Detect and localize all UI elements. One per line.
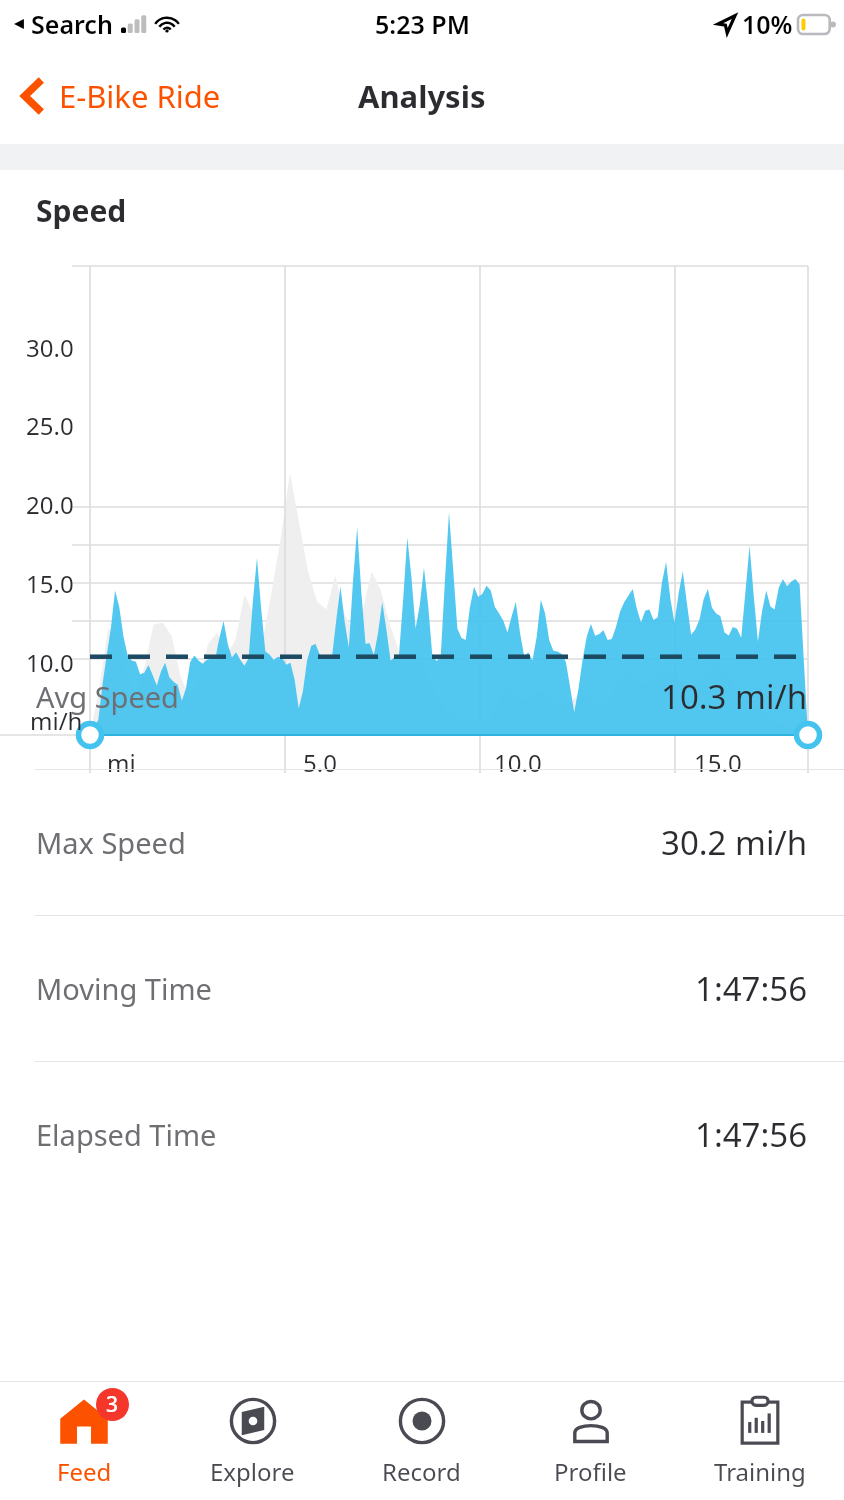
staticText: 1:47:56 (695, 966, 808, 1011)
staticText: 10.3 mi/h (661, 674, 808, 719)
staticText: 10.0 (494, 746, 542, 779)
staticText: 1:47:56 (695, 1112, 808, 1157)
staticText: Feed (57, 1455, 112, 1488)
staticText: Speed (36, 190, 127, 231)
button[interactable]: Training (675, 1382, 844, 1500)
staticText: 5.0 (303, 746, 337, 779)
staticText: 25.0 (26, 409, 74, 442)
staticText: Moving Time (36, 969, 212, 1008)
button[interactable]: Record (337, 1382, 506, 1500)
staticText: E-Bike Ride (59, 75, 221, 117)
button[interactable]: E-Bike Ride (0, 67, 233, 125)
staticText: 30.2 mi/h (661, 820, 808, 865)
staticText: Elapsed Time (36, 1115, 217, 1154)
staticText: mi (107, 746, 136, 779)
staticText: Avg Speed (36, 677, 179, 716)
staticText: Profile (554, 1455, 627, 1488)
staticText: 3 (106, 1390, 119, 1419)
staticText: 10.0 (26, 646, 74, 679)
staticText: Search (31, 7, 113, 41)
staticText: 30.0 (26, 331, 74, 364)
staticText: Max Speed (36, 823, 186, 862)
staticText: 15.0 (26, 567, 74, 600)
staticText: 15.0 (694, 746, 742, 779)
staticText: 5:23 PM (375, 7, 470, 41)
staticText: Training (714, 1455, 806, 1488)
button[interactable]: Explore (168, 1382, 337, 1500)
staticText: 10% (742, 7, 793, 41)
button[interactable]: Profile (506, 1382, 675, 1500)
button[interactable]: 3 (0, 1382, 168, 1500)
button[interactable]: Elapsed Time (0, 1062, 844, 1207)
button[interactable]: Max Speed (0, 770, 844, 915)
button[interactable]: Moving Time (0, 916, 844, 1061)
staticText: Analysis (358, 75, 486, 117)
staticText: Record (382, 1455, 461, 1488)
staticText: 20.0 (26, 488, 74, 521)
button[interactable]: Avg Speed (0, 624, 844, 769)
staticText: Explore (210, 1455, 295, 1488)
staticText: mi/h (30, 704, 83, 737)
